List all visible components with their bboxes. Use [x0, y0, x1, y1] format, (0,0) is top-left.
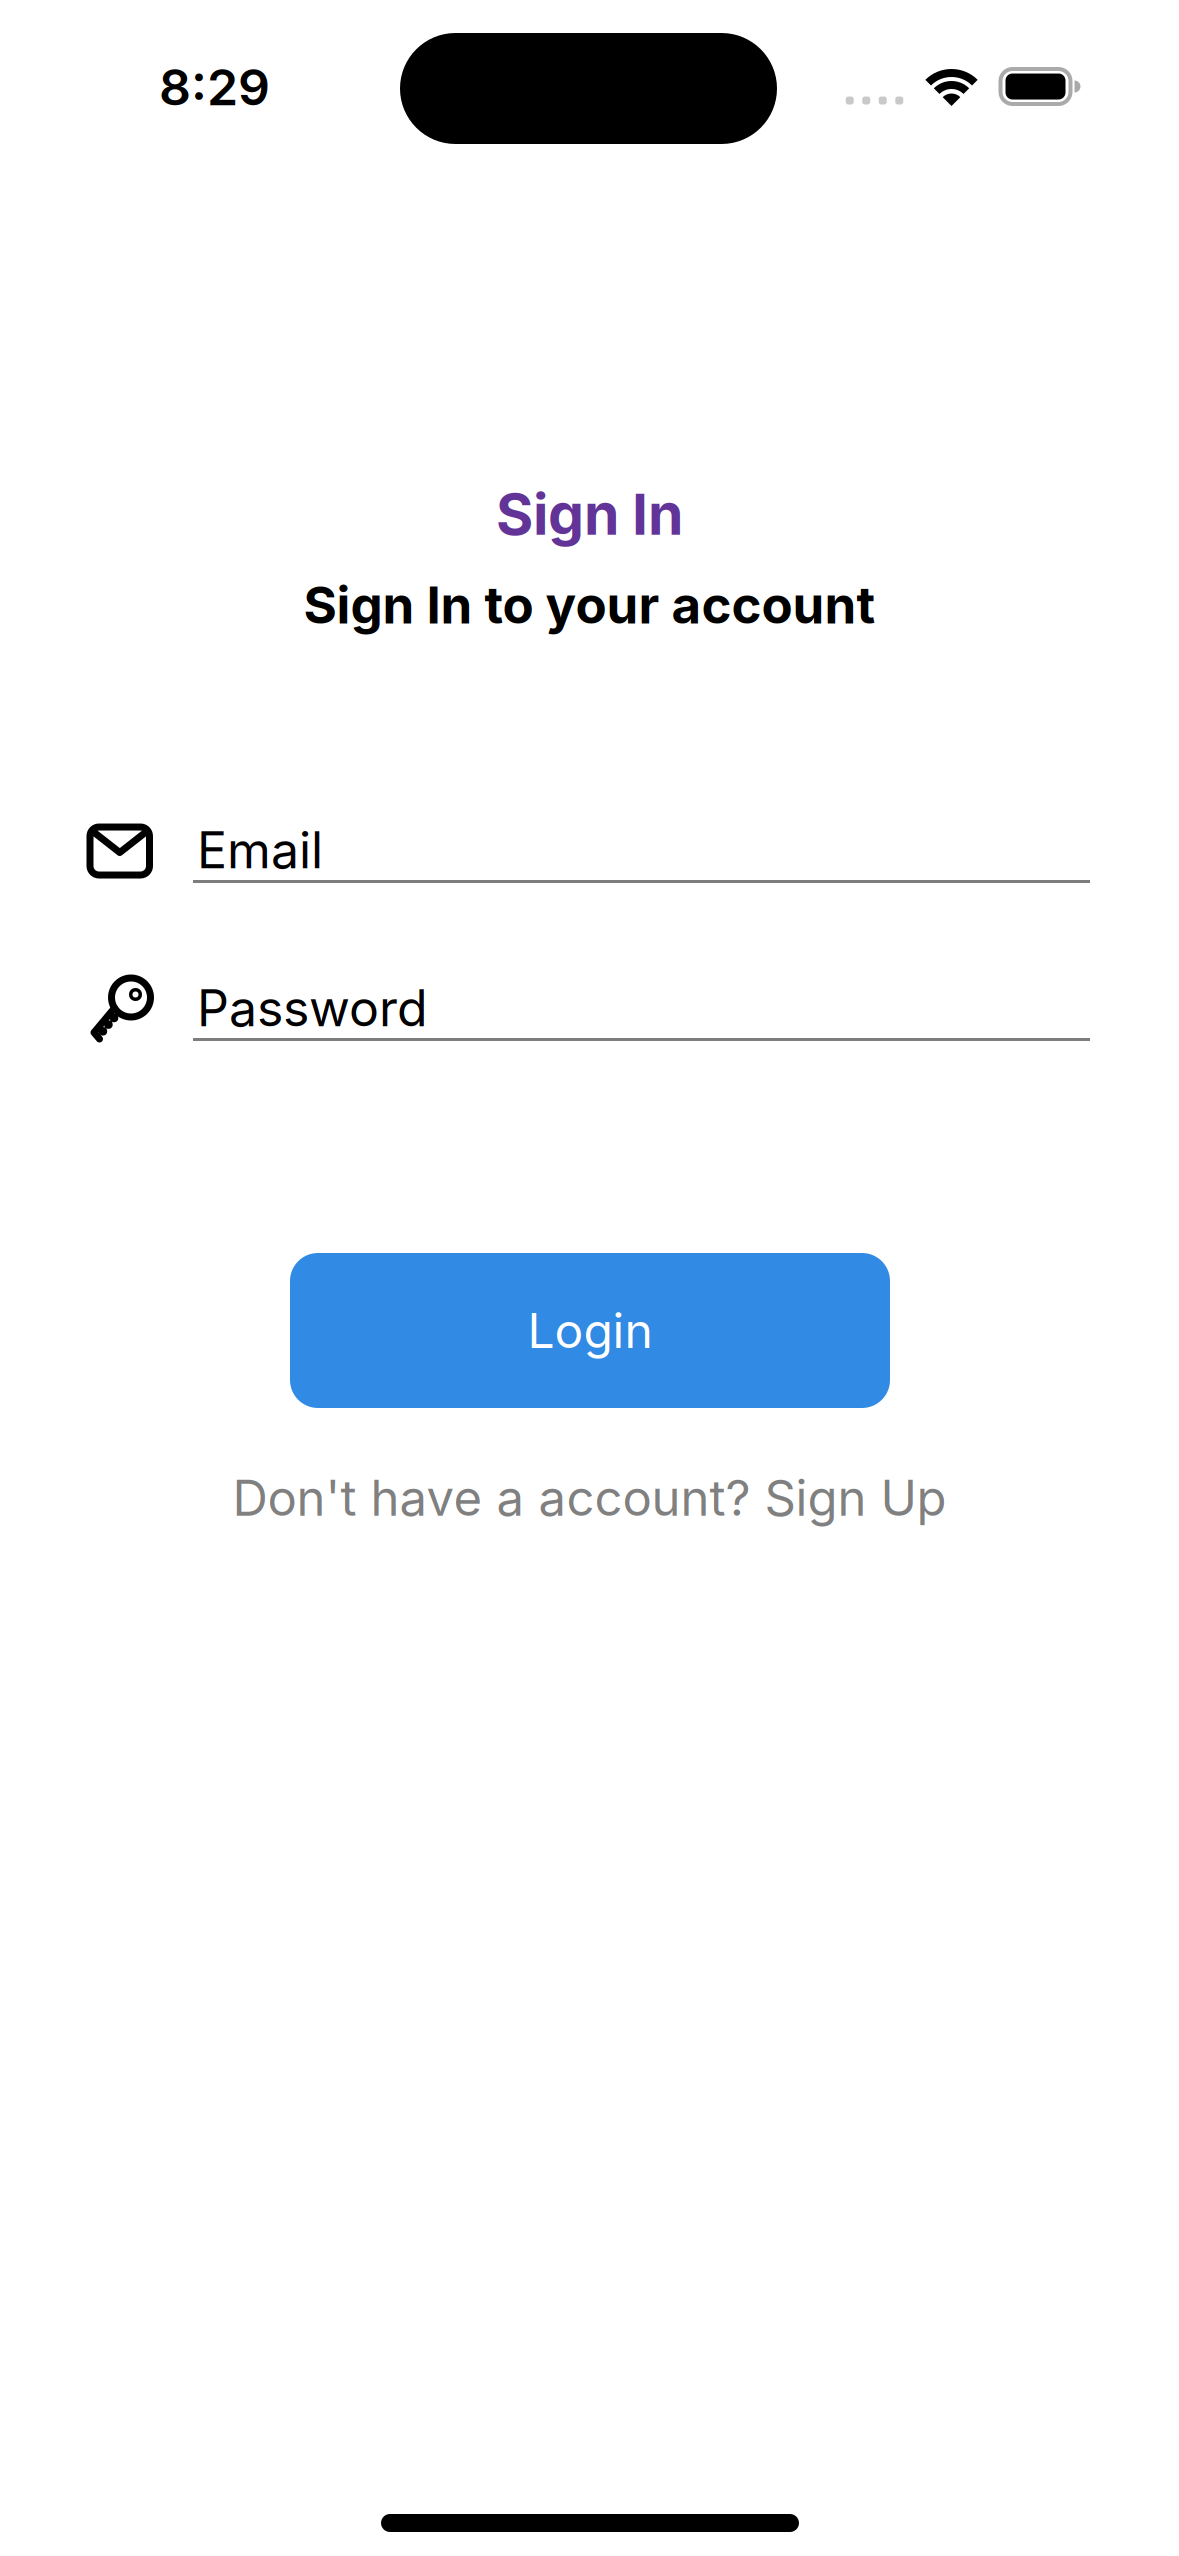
staticText: Login — [527, 1301, 652, 1360]
button[interactable]: Login — [290, 1253, 890, 1408]
staticText: Sign In to your account — [303, 574, 875, 636]
staticText: Sign In — [496, 479, 683, 548]
button[interactable]: Don't have a account? Sign Up — [232, 1468, 946, 1528]
staticText: Don't have a account? Sign Up — [232, 1468, 946, 1528]
staticText: 8:29 — [159, 57, 270, 117]
staticText: Password — [197, 978, 428, 1038]
staticText: Email — [197, 820, 323, 880]
button[interactable]: Email — [193, 806, 1090, 884]
button[interactable]: Password — [193, 964, 1090, 1042]
